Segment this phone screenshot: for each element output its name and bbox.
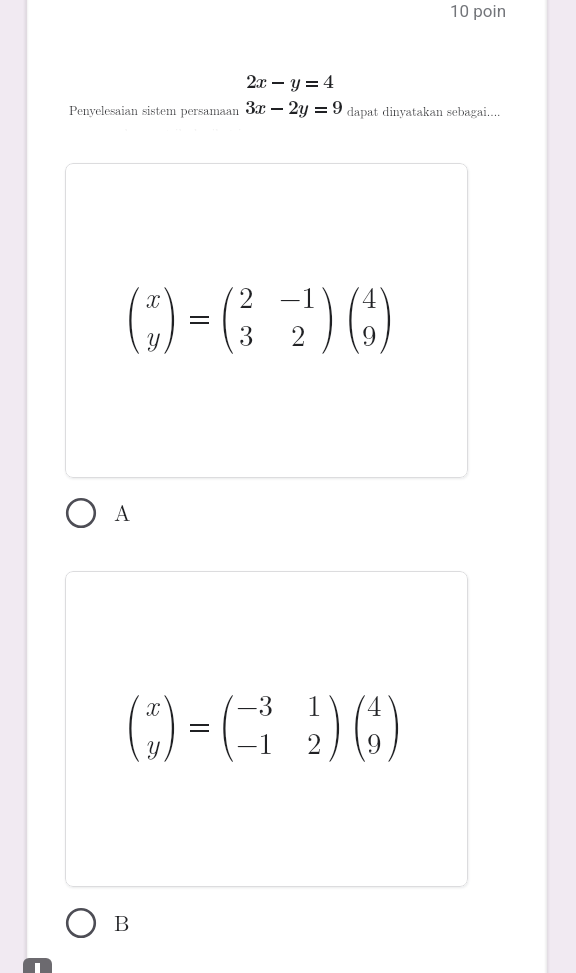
staticText: 2 bbox=[239, 275, 254, 316]
button[interactable]: B bbox=[66, 908, 130, 938]
staticText: A bbox=[114, 496, 131, 526]
staticText: 10 poin bbox=[450, 1, 507, 21]
staticText: ( bbox=[219, 670, 236, 766]
staticText: −3 bbox=[236, 683, 274, 724]
staticText: 2 bbox=[307, 721, 322, 762]
staticText: y bbox=[145, 721, 160, 762]
staticText: 2 bbox=[288, 92, 299, 119]
staticText: y bbox=[297, 92, 308, 120]
staticText: 2 bbox=[291, 313, 306, 354]
staticText: x bbox=[145, 275, 159, 316]
staticText: 1 bbox=[307, 683, 322, 724]
staticText: x bbox=[254, 92, 265, 120]
staticText: 4 bbox=[323, 66, 334, 93]
staticText: 3 bbox=[245, 92, 256, 119]
staticText: 2 bbox=[246, 66, 257, 93]
staticText: 9 bbox=[362, 313, 377, 354]
staticText: x bbox=[145, 683, 159, 724]
staticText: ) bbox=[162, 670, 179, 766]
staticText: ) bbox=[320, 262, 337, 358]
staticText: ) bbox=[386, 670, 403, 766]
staticText: −1 bbox=[236, 721, 274, 762]
staticText: 4 bbox=[362, 275, 377, 316]
button[interactable] bbox=[65, 163, 468, 478]
staticText: ( bbox=[219, 262, 236, 358]
staticText: ) bbox=[327, 670, 344, 766]
staticText: 9 bbox=[332, 92, 343, 119]
button[interactable]: A bbox=[66, 498, 131, 528]
staticText: ( bbox=[345, 262, 362, 358]
staticText: −1 bbox=[279, 275, 317, 316]
staticText: y bbox=[145, 313, 160, 354]
button[interactable] bbox=[65, 571, 468, 887]
staticText: 9 bbox=[367, 721, 382, 762]
staticText: x bbox=[255, 66, 266, 94]
staticText: ( bbox=[125, 670, 142, 766]
staticText: ) bbox=[378, 262, 395, 358]
staticText: ) bbox=[162, 262, 179, 358]
staticText: dapat dinyatakan sebagai.... bbox=[347, 102, 501, 120]
staticText: y bbox=[289, 66, 300, 94]
staticText: B bbox=[114, 906, 130, 936]
staticText: ( bbox=[125, 262, 142, 358]
staticText: 4 bbox=[367, 683, 382, 724]
button[interactable]: Info bbox=[23, 958, 52, 973]
staticText: 3 bbox=[239, 313, 254, 354]
staticText: Penyelesaian sistem persamaan bbox=[69, 101, 240, 119]
staticText: ( bbox=[351, 670, 368, 766]
